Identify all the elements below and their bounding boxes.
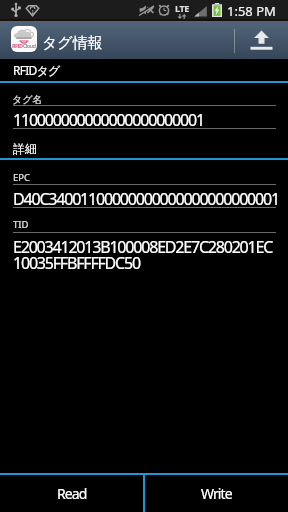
staticText: RFIDタグ [13,62,60,78]
staticText: Write [201,484,232,503]
staticText: タグ情報 [42,34,103,53]
staticText: 1:58 PM [227,2,276,20]
staticText: 10035FFBFFFFDC50 [13,252,140,274]
button[interactable]: Read [0,475,143,512]
staticText: 詳細 [13,141,37,156]
button[interactable]: Write [145,475,288,512]
staticText: Cloud [23,42,36,49]
staticText: Read [57,484,87,503]
staticText: LTE [175,2,189,14]
button[interactable]: Upload [235,21,288,59]
staticText: 110000000000000000000001 [13,109,204,131]
staticText: TID [13,218,29,231]
staticText: EPC [13,171,31,184]
staticText: RFID [12,42,23,49]
staticText: D40C34001100000000000000000000001 [13,188,279,210]
staticText: タグ名 [12,93,43,106]
staticText: E2003412013B100008ED2E7C280201EC [13,236,273,258]
